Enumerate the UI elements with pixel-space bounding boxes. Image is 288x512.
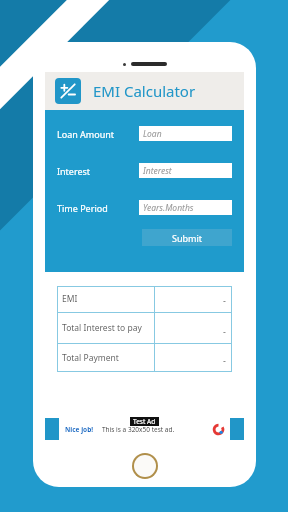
staticText: EMI (62, 293, 78, 305)
staticText: Test Ad (133, 417, 156, 426)
button[interactable]: Nice job! (59, 418, 230, 440)
staticText: - (223, 294, 226, 306)
staticText: Time Period (57, 202, 139, 214)
staticText: This is a 320x50 test ad. (102, 425, 175, 434)
staticText: Total Interest to pay (62, 322, 142, 334)
button[interactable]: Total Payment (57, 344, 232, 372)
button[interactable]: App icon (55, 78, 81, 104)
button[interactable]: EMI (57, 286, 232, 312)
staticText: Years.Months (143, 202, 194, 214)
button[interactable]: Years.Months (143, 200, 228, 215)
other: Ad (213, 424, 224, 435)
staticText: Interest (57, 165, 139, 177)
button[interactable]: Interest (143, 163, 228, 178)
staticText: - (223, 325, 226, 337)
staticText: - (223, 354, 226, 366)
staticText: Loan (143, 128, 162, 140)
staticText: Submit (172, 232, 203, 244)
staticText: Total Payment (62, 352, 119, 364)
staticText: Loan Amount (57, 128, 139, 140)
staticText: EMI Calculator (93, 81, 196, 101)
button[interactable]: Home (134, 455, 156, 477)
staticText: Nice job! (65, 425, 94, 434)
button[interactable]: Submit (142, 229, 232, 246)
staticText: Interest (143, 165, 172, 177)
staticText: EMI CALCULATOR (6, 0, 112, 82)
button[interactable]: Loan (143, 126, 228, 141)
button[interactable]: Total Interest to pay (57, 313, 232, 343)
